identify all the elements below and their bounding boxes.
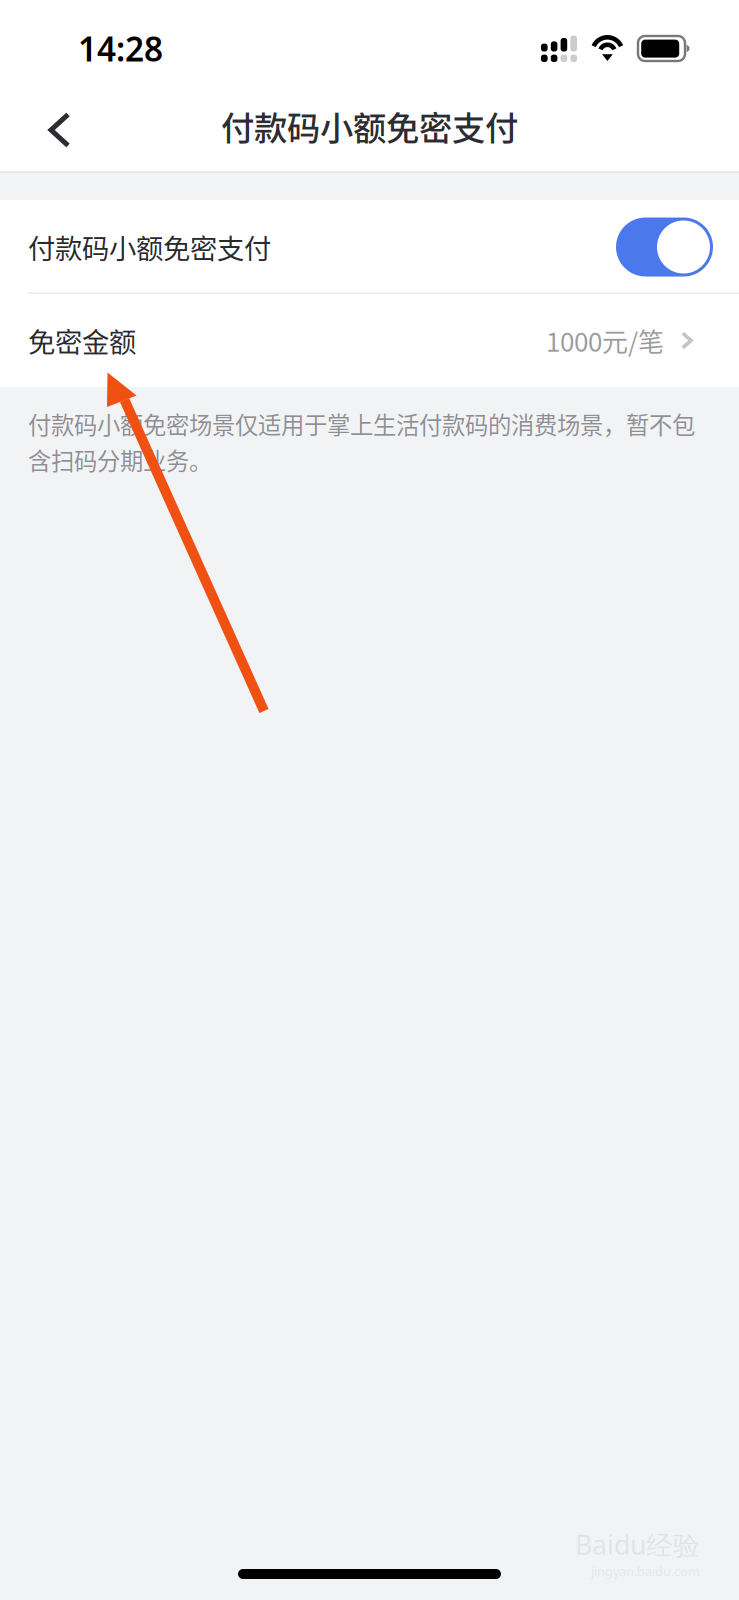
button[interactable]: 免密金额 xyxy=(0,294,739,387)
staticText: 免密金额 xyxy=(28,321,136,360)
staticText: 付款码小额免密场景仅适用于掌上生活付款码的消费场景，暂不包含扫码分期业务。 xyxy=(28,406,695,478)
staticText: 1000元/笔 xyxy=(546,322,664,359)
staticText: jingyan.baidu.com xyxy=(591,1563,700,1580)
staticText: Baidu经验 xyxy=(575,1526,700,1563)
staticText: 付款码小额免密支付 xyxy=(28,227,271,267)
button[interactable]: 付款码小额免密支付 xyxy=(0,200,739,294)
staticText: 付款码小额免密支付 xyxy=(221,102,518,150)
staticText: 14:28 xyxy=(78,26,163,71)
button[interactable]: 返回 xyxy=(0,97,97,173)
